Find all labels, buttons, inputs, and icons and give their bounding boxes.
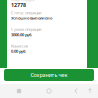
button[interactable]: Back bbox=[0, 84, 98, 98]
button[interactable]: Home bbox=[0, 84, 98, 98]
staticText: 3000.00 руб. bbox=[11, 32, 32, 37]
staticText: Сумма операции bbox=[11, 27, 41, 32]
staticText: 12778 bbox=[11, 1, 26, 9]
button[interactable]: Recent apps bbox=[0, 84, 98, 98]
staticText: Успешно выполнено bbox=[11, 15, 52, 21]
button[interactable]: Сохранить чек bbox=[4, 69, 94, 81]
staticText: Номер операции bbox=[11, 0, 35, 2]
staticText: Сохранить чек bbox=[30, 71, 67, 79]
staticText: 0.00 руб. bbox=[11, 49, 26, 54]
button[interactable]: Hide keyboard bbox=[0, 84, 98, 98]
staticText: Статус операции bbox=[11, 10, 41, 15]
staticText: Комиссия bbox=[11, 43, 28, 48]
